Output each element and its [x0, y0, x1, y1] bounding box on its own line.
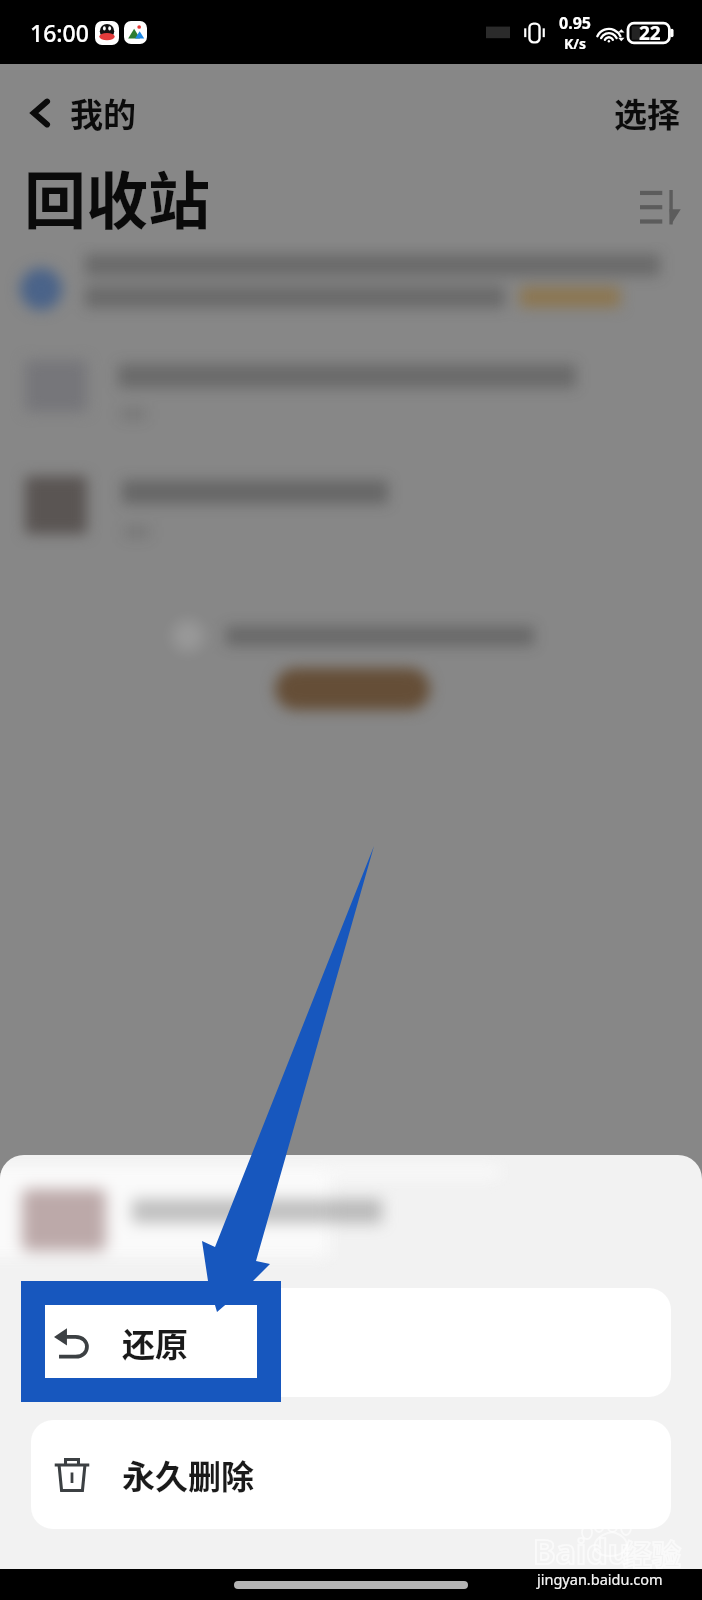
staticText: 经验 [623, 1532, 682, 1574]
button[interactable]: 还原 [31, 1288, 671, 1397]
staticText: 还原 [122, 1319, 188, 1367]
button[interactable]: Back [18, 89, 136, 137]
button[interactable]: 永久删除 [31, 1420, 671, 1529]
staticText: Baidu [533, 1528, 630, 1574]
button[interactable]: 选择 [614, 89, 680, 137]
button[interactable]: Sort [640, 190, 682, 232]
staticText: 回收站 [24, 152, 211, 232]
staticText: 0.95 [559, 12, 591, 34]
staticText: K/s [564, 34, 587, 53]
staticText: 经验 [623, 1532, 682, 1574]
staticText: 16:00 [30, 17, 89, 48]
staticText: 我的 [70, 89, 136, 137]
staticText: jingyan.baidu.com [537, 1569, 663, 1589]
staticText: 永久删除 [122, 1451, 254, 1499]
other: Back [18, 91, 62, 135]
staticText: 22 [639, 20, 661, 46]
staticText: Baidu [533, 1528, 630, 1574]
